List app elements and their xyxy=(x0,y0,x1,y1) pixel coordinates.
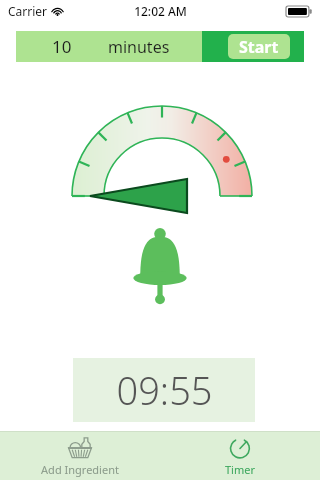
staticText: Start xyxy=(239,36,279,58)
staticText: minutes xyxy=(108,36,170,58)
staticText: Carrier xyxy=(8,3,48,19)
staticText: 09:55 xyxy=(116,364,213,416)
other: Timer xyxy=(229,437,251,459)
button[interactable]: 10 xyxy=(16,31,202,62)
staticText: Timer xyxy=(225,462,255,477)
staticText: 10 xyxy=(52,35,72,58)
button[interactable]: Timer xyxy=(160,432,320,480)
button[interactable]: 09:55 xyxy=(73,358,255,422)
staticText: 12:02 AM xyxy=(134,3,187,19)
other: Add Ingredient xyxy=(67,437,93,459)
button[interactable]: Add Ingredient xyxy=(0,432,160,480)
staticText: Add Ingredient xyxy=(41,462,119,477)
button[interactable]: Start xyxy=(202,31,304,62)
